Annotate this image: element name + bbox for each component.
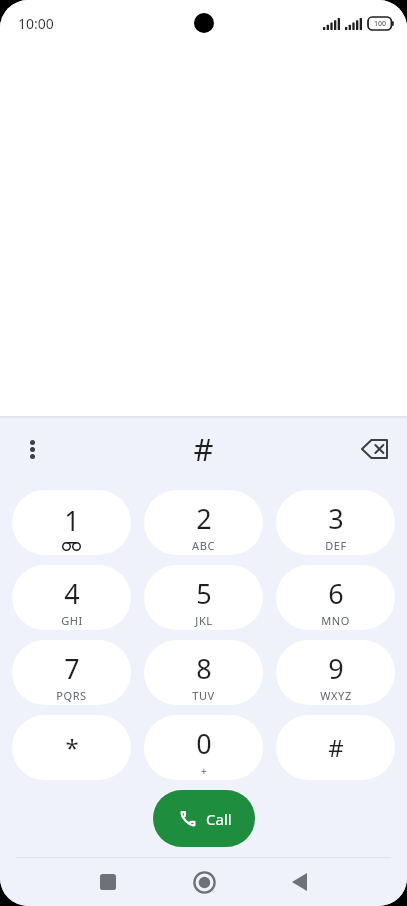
button[interactable]: 7 xyxy=(12,640,131,705)
button[interactable]: 3 xyxy=(276,490,395,555)
staticText: 8 xyxy=(196,650,212,687)
button[interactable]: 2 xyxy=(144,490,263,555)
staticText: PQRS xyxy=(56,688,87,703)
button[interactable]: Back xyxy=(277,860,321,904)
staticText: 6 xyxy=(328,575,344,612)
button[interactable]: Home xyxy=(181,859,227,905)
button[interactable]: Recent apps xyxy=(86,860,130,904)
staticText: # xyxy=(193,428,214,470)
staticText: 0 xyxy=(196,725,212,762)
button[interactable]: 5 xyxy=(144,565,263,630)
button[interactable]: 6 xyxy=(276,565,395,630)
staticText: Call xyxy=(206,809,232,829)
button[interactable]: # xyxy=(276,715,395,780)
staticText: WXYZ xyxy=(320,688,352,703)
button[interactable]: Call xyxy=(153,790,255,847)
staticText: 9 xyxy=(328,650,344,687)
staticText: GHI xyxy=(61,613,83,628)
button[interactable]: * xyxy=(12,715,131,780)
button[interactable]: More options xyxy=(10,427,54,471)
staticText: * xyxy=(65,731,79,764)
button[interactable]: 4 xyxy=(12,565,131,630)
button[interactable]: 1 xyxy=(12,490,131,555)
staticText: ABC xyxy=(192,538,215,553)
staticText: # xyxy=(328,731,344,764)
button[interactable]: Backspace xyxy=(351,426,397,472)
staticText: 4 xyxy=(64,575,80,612)
button[interactable]: 9 xyxy=(276,640,395,705)
staticText: TUV xyxy=(192,688,215,703)
button[interactable]: 8 xyxy=(144,640,263,705)
staticText: 2 xyxy=(196,500,212,537)
staticText: 10:00 xyxy=(18,14,54,33)
staticText: MNO xyxy=(321,613,350,628)
staticText: JKL xyxy=(195,613,213,628)
staticText: 1 xyxy=(64,502,80,539)
staticText: DEF xyxy=(325,538,347,553)
staticText: + xyxy=(201,764,207,778)
staticText: 5 xyxy=(196,575,212,612)
button[interactable]: 0 xyxy=(144,715,263,780)
staticText: 7 xyxy=(64,650,80,687)
staticText: 100 xyxy=(374,19,387,29)
staticText: 3 xyxy=(328,500,344,537)
